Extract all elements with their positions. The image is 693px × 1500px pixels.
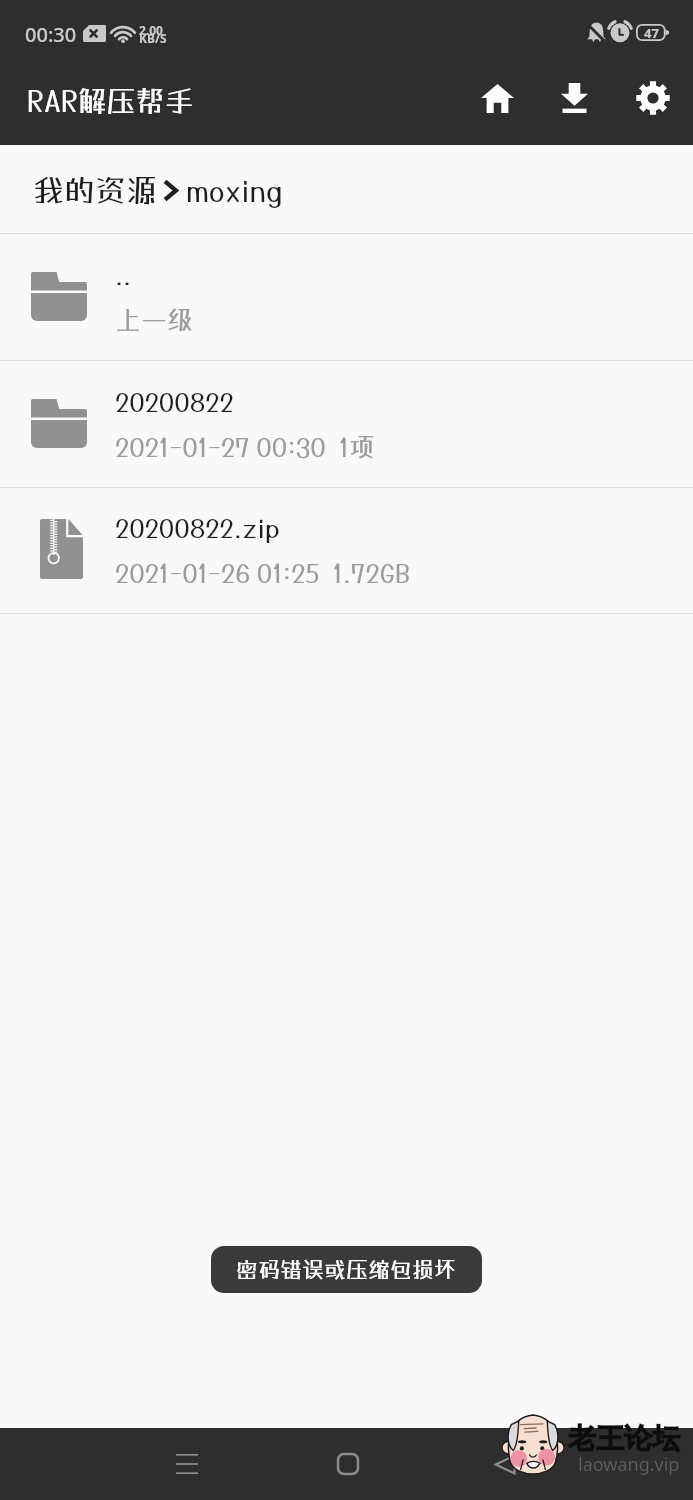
button[interactable]: Home	[468, 69, 526, 127]
staticText: 47	[644, 24, 659, 41]
staticText: KB/S	[139, 30, 167, 46]
staticText: 我的资源	[33, 172, 157, 209]
staticText: 2.00	[139, 22, 163, 38]
staticText: ..	[115, 259, 132, 290]
staticText: RAR解压帮手	[27, 84, 194, 118]
button[interactable]: Recents	[151, 1428, 223, 1500]
staticText: 老王论坛	[568, 1421, 680, 1456]
button[interactable]: Settings	[624, 69, 682, 127]
staticText: moxing	[186, 174, 284, 208]
staticText: 20200822	[115, 386, 234, 417]
button[interactable]: 我的资源	[0, 146, 693, 233]
staticText: 20200822.zip	[115, 512, 280, 543]
button[interactable]: 20200822	[0, 361, 693, 487]
button[interactable]: 20200822.zip	[0, 488, 693, 613]
button[interactable]: Back	[469, 1428, 541, 1500]
button[interactable]: Home	[312, 1428, 384, 1500]
staticText: 00:30	[25, 21, 77, 48]
button[interactable]: ..	[0, 234, 693, 360]
staticText: 密码错误或压缩包损坏	[236, 1256, 457, 1282]
staticText: 2021-01-26 01:25 1.72GB	[115, 557, 411, 588]
button[interactable]: Downloads	[545, 69, 603, 127]
staticText: 上一级	[115, 304, 194, 335]
staticText: laowang.vip	[578, 1452, 680, 1477]
staticText: 2021-01-27 00:30 1项	[115, 431, 375, 462]
